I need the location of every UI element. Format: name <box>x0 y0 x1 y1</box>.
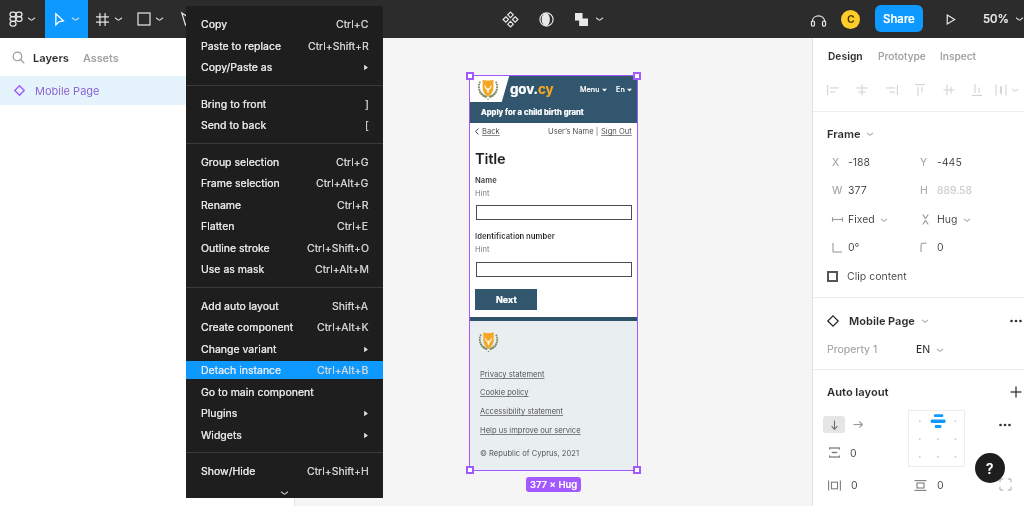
button[interactable]: 0° <box>848 241 920 254</box>
button[interactable]: Align <box>825 82 841 98</box>
button[interactable]: Auto layout options <box>997 417 1013 433</box>
staticText: Flatten <box>201 220 235 233</box>
staticText: Copy <box>201 18 228 31</box>
button[interactable]: Prototype <box>878 50 926 62</box>
button[interactable]: Mask <box>532 5 560 33</box>
button[interactable]: Outline stroke <box>186 237 383 259</box>
button[interactable]: Paste to replace <box>186 35 383 57</box>
button[interactable]: Send to back <box>186 114 383 136</box>
staticText: Frame <box>827 127 861 140</box>
button[interactable]: Help us improve our service <box>480 425 581 436</box>
button[interactable]: Align <box>993 82 1009 98</box>
button[interactable] <box>476 205 632 220</box>
staticText: Back <box>482 127 500 136</box>
button[interactable]: Sign Out <box>601 127 632 136</box>
button[interactable]: Components <box>496 5 524 33</box>
button[interactable]: Use as mask <box>186 258 383 280</box>
staticText: W <box>832 184 843 197</box>
button[interactable]: Flatten <box>186 215 383 237</box>
button[interactable]: Privacy statement <box>480 369 545 380</box>
staticText: 50% <box>983 12 1009 26</box>
button[interactable]: Go to main component <box>186 381 383 403</box>
button[interactable]: Horizontal layout <box>849 416 866 433</box>
staticText: Add auto layout <box>201 300 279 313</box>
staticText: Accessibility statement <box>480 407 564 416</box>
button[interactable]: Rename <box>186 194 383 216</box>
staticText: Create component <box>201 321 294 334</box>
staticText: Ctrl+Shift+O <box>307 242 369 255</box>
staticText: ? <box>986 460 994 477</box>
button[interactable]: -445 <box>937 156 1024 169</box>
staticText: Ctrl+Shift+R <box>308 40 369 53</box>
button[interactable]: Add auto layout <box>1008 384 1024 400</box>
button[interactable]: Change variant <box>186 338 383 360</box>
button[interactable]: Align <box>912 82 928 98</box>
button[interactable]: Clip content <box>827 268 907 284</box>
staticText: Ctrl+R <box>337 199 369 212</box>
button[interactable]: Menu <box>580 85 607 94</box>
button[interactable]: Next <box>475 289 537 310</box>
button[interactable]: Layers <box>0 38 294 76</box>
button[interactable]: Present <box>937 6 963 32</box>
staticText: Share <box>883 12 915 26</box>
button[interactable]: Tool <box>0 0 45 38</box>
button[interactable]: 0 <box>937 241 1024 254</box>
button[interactable]: Fixed <box>848 213 920 226</box>
button[interactable]: Plugins <box>186 402 383 424</box>
button[interactable]: Tool <box>45 0 88 38</box>
staticText: © Republic of Cyprus, 2021 <box>480 449 580 458</box>
button[interactable]: Align <box>941 82 957 98</box>
staticText: User’s Name | <box>548 127 601 136</box>
staticText: gov. <box>510 81 538 97</box>
button[interactable] <box>476 262 632 277</box>
button[interactable]: Add auto layout <box>186 295 383 317</box>
staticText: Send to back <box>201 119 267 132</box>
button[interactable]: Share <box>875 5 923 32</box>
button[interactable]: Cookie policy <box>480 387 529 398</box>
button[interactable]: Mobile Page <box>0 76 294 105</box>
button[interactable]: Create component <box>186 316 383 338</box>
button[interactable]: Hug <box>937 213 1024 226</box>
button[interactable]: 889.58 <box>937 184 1024 197</box>
button[interactable]: 377 <box>848 184 920 197</box>
button[interactable]: Bring to front <box>186 93 383 115</box>
button[interactable]: Copy/Paste as <box>186 56 383 78</box>
button[interactable]: Alignment grid <box>908 410 965 467</box>
button[interactable]: Back <box>475 127 500 136</box>
button[interactable]: Help <box>975 453 1005 483</box>
button[interactable]: Tool <box>172 0 214 38</box>
button[interactable]: 50% <box>979 6 1024 32</box>
button[interactable]: Design <box>828 50 863 62</box>
button[interactable]: Frame selection <box>186 172 383 194</box>
button[interactable]: Align <box>884 82 900 98</box>
staticText: Copy/Paste as <box>201 61 273 74</box>
button[interactable]: Boolean groups <box>567 4 604 34</box>
staticText: X <box>832 156 840 169</box>
button[interactable]: Audio chat <box>804 5 832 33</box>
staticText: -445 <box>937 156 962 169</box>
button[interactable]: Detach instance <box>186 359 383 381</box>
staticText: Hug <box>937 213 958 226</box>
button[interactable]: Align <box>854 82 870 98</box>
button[interactable]: Tool <box>88 0 130 38</box>
staticText: Shift+A <box>332 300 369 313</box>
button[interactable]: EN <box>916 343 931 356</box>
button[interactable]: More options <box>1008 313 1024 329</box>
button[interactable]: Show/Hide <box>186 460 383 482</box>
button[interactable]: -188 <box>848 156 920 169</box>
button[interactable]: Vertical layout <box>823 416 845 433</box>
button[interactable]: Accessibility statement <box>480 406 564 417</box>
staticText: Bring to front <box>201 98 267 111</box>
staticText: cy <box>538 81 554 97</box>
button[interactable]: Widgets <box>186 424 383 446</box>
button[interactable]: Group selection <box>186 151 383 173</box>
button[interactable]: Tool <box>130 0 172 38</box>
staticText: Help us improve our service <box>480 426 581 435</box>
button[interactable]: Align <box>969 82 985 98</box>
staticText: Mobile Page <box>849 314 915 327</box>
button[interactable]: En <box>616 85 632 94</box>
button[interactable]: Account <box>841 10 860 29</box>
button[interactable]: Copy <box>186 13 383 35</box>
staticText: Y <box>920 156 928 169</box>
button[interactable]: Inspect <box>940 50 977 62</box>
